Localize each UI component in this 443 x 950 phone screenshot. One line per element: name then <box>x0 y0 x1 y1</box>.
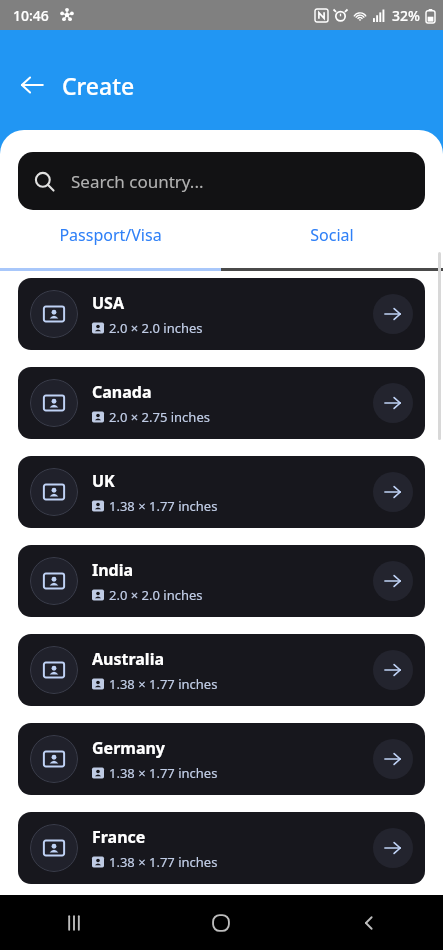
button[interactable]: Open France <box>373 828 413 868</box>
button[interactable]: Home <box>147 895 295 950</box>
staticText: 10:46 <box>13 6 49 25</box>
staticText: 2.0 × 2.0 inches <box>109 586 203 604</box>
button[interactable]: France <box>18 812 425 884</box>
staticText: Germany <box>92 737 166 759</box>
staticText: 1.38 × 1.77 inches <box>109 764 218 782</box>
staticText: 2.0 × 2.75 inches <box>109 408 210 426</box>
staticText: India <box>92 559 134 581</box>
button[interactable]: Back <box>295 895 443 950</box>
staticText: 1.38 × 1.77 inches <box>109 930 218 948</box>
button[interactable]: Germany <box>18 723 425 795</box>
button[interactable]: Open India <box>373 561 413 601</box>
staticText: USA <box>92 292 124 314</box>
button[interactable]: Open Germany <box>373 739 413 779</box>
button[interactable]: UK <box>18 456 425 528</box>
staticText: Search country... <box>71 170 204 193</box>
button[interactable]: Back <box>14 67 50 103</box>
staticText: Canada <box>92 381 152 403</box>
button[interactable]: India <box>18 545 425 617</box>
staticText: Social <box>310 224 354 246</box>
staticText: 32% <box>392 6 420 25</box>
staticText: 1.38 × 1.77 inches <box>109 675 218 693</box>
button[interactable]: Social <box>221 224 443 246</box>
button[interactable]: Open USA <box>373 294 413 334</box>
button[interactable]: Search country... <box>18 152 425 210</box>
staticText: France <box>92 826 146 848</box>
button[interactable]: Open Canada <box>373 383 413 423</box>
button[interactable]: USA <box>18 278 425 350</box>
staticText: 2.0 × 2.0 inches <box>109 319 203 337</box>
button[interactable]: Recents <box>0 895 147 950</box>
button[interactable]: Open Australia <box>373 650 413 690</box>
button[interactable]: Open UK <box>373 472 413 512</box>
button[interactable]: Passport/Visa <box>0 224 221 246</box>
staticText: Australia <box>92 648 165 670</box>
button[interactable]: Canada <box>18 367 425 439</box>
button[interactable]: Australia <box>18 634 425 706</box>
staticText: 1.38 × 1.77 inches <box>109 497 218 515</box>
button[interactable]: Japan <box>18 901 425 950</box>
staticText: Create <box>62 70 135 101</box>
staticText: Passport/Visa <box>59 224 162 246</box>
staticText: 1.38 × 1.77 inches <box>109 853 218 871</box>
staticText: UK <box>92 470 115 492</box>
